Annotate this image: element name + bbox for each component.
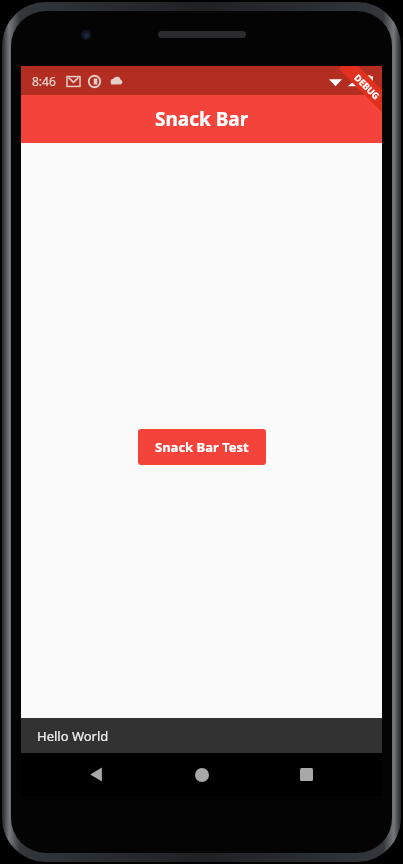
staticText: 8:46 — [32, 73, 56, 89]
button[interactable]: Hello World — [21, 718, 382, 753]
staticText: Snack Bar Test — [155, 438, 249, 456]
button[interactable]: Snack Bar Test — [138, 429, 266, 465]
staticText: Hello World — [37, 727, 109, 745]
button[interactable]: Recent apps — [283, 753, 329, 796]
button[interactable]: Home — [179, 753, 225, 796]
staticText: Snack Bar — [155, 106, 249, 132]
button[interactable]: Back — [73, 753, 119, 796]
staticText: DEBUG — [352, 71, 382, 102]
